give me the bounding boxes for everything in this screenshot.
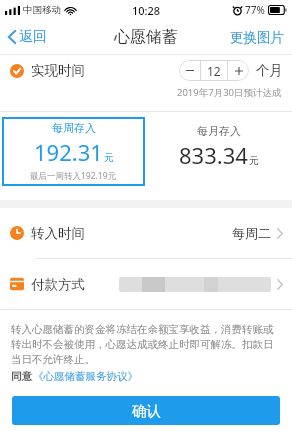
staticText: 10:28 xyxy=(132,3,161,18)
staticText: 个月 xyxy=(256,62,283,79)
button[interactable]: 返回 xyxy=(0,23,57,51)
staticText: 同意 xyxy=(11,370,32,383)
staticText: 833.34 xyxy=(179,140,248,170)
staticText: 每月存入 xyxy=(197,124,241,138)
staticText: 最后一周转入192.19元 xyxy=(30,170,117,182)
staticText: 中国移动 xyxy=(23,4,61,16)
button[interactable]: 付款方式 xyxy=(0,259,292,309)
button[interactable]: 《心愿储蓄服务协议》 xyxy=(33,370,138,383)
button[interactable]: 转入时间 xyxy=(0,208,292,258)
button[interactable]: Increase months xyxy=(228,60,249,81)
staticText: 2019年7月30日预计达成 xyxy=(177,86,282,99)
staticText: 实现时间 xyxy=(31,62,85,79)
staticText: 确认 xyxy=(132,402,161,420)
staticText: 192.31 xyxy=(34,137,103,167)
staticText: 77% xyxy=(245,3,265,17)
staticText: 元 xyxy=(104,151,114,164)
staticText: 元 xyxy=(249,154,259,167)
staticText: 每周存入 xyxy=(52,121,96,135)
button[interactable]: 更换图片 xyxy=(222,24,292,51)
staticText: 更换图片 xyxy=(230,29,284,46)
staticText: 《心愿储蓄服务协议》 xyxy=(33,370,138,383)
staticText: 12 xyxy=(207,63,221,79)
staticText: 转入时间 xyxy=(31,225,85,242)
staticText: 心愿储蓄 xyxy=(114,27,178,47)
button[interactable]: 每月存入 xyxy=(146,112,292,200)
staticText: 付款方式 xyxy=(31,276,85,293)
button[interactable]: 每周存入 xyxy=(2,117,145,186)
button[interactable]: 确认 xyxy=(12,396,280,425)
staticText: 转入心愿储蓄的资金将冻结在余额宝享收益，消费转账或转出时不会被使用，心愿达成或终… xyxy=(11,323,281,366)
button[interactable]: Decrease months xyxy=(179,60,200,81)
staticText: 返回 xyxy=(19,28,47,46)
staticText: 每周二 xyxy=(232,225,271,241)
